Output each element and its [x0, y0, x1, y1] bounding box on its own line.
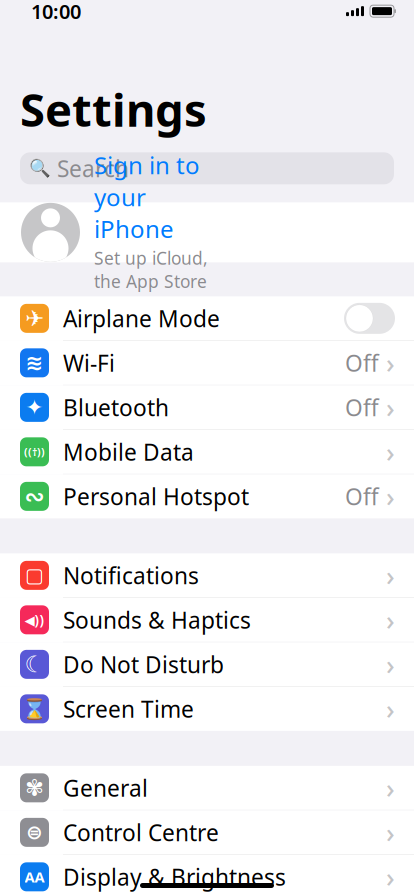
staticText: Notifications [63, 560, 199, 590]
staticText: ☾ [24, 651, 44, 677]
staticText: Mobile Data [63, 437, 194, 467]
staticText: Screen Time [63, 694, 194, 724]
button[interactable]: ∾ [0, 474, 414, 518]
staticText: › [386, 602, 395, 637]
button[interactable]: ≋ [0, 341, 414, 385]
button[interactable]: ✦ [0, 385, 414, 430]
button[interactable]: ⌛ [0, 687, 414, 731]
button[interactable]: ✾ [0, 766, 414, 810]
staticText: › [386, 434, 395, 469]
staticText: Settings [20, 79, 207, 139]
staticText: › [386, 558, 395, 593]
staticText: › [386, 345, 395, 380]
button[interactable]: ⊜ [0, 810, 414, 855]
staticText: › [386, 647, 395, 682]
staticText: ✈ [25, 305, 44, 331]
staticText: ⌛ [22, 697, 47, 720]
staticText: ⊜ [26, 821, 43, 844]
staticText: General [63, 773, 148, 803]
staticText: Sounds & Haptics [63, 605, 251, 635]
staticText: Bluetooth [63, 392, 169, 422]
button[interactable]: Sign in to your iPhone [0, 202, 414, 262]
staticText: › [386, 691, 395, 726]
button[interactable]: ☾ [0, 642, 414, 687]
staticText: ((†)) [24, 445, 45, 459]
staticText: ∾ [24, 483, 44, 510]
staticText: › [386, 859, 395, 894]
staticText: ✾ [25, 775, 44, 801]
staticText: Personal Hotspot [63, 481, 249, 511]
staticText: › [386, 770, 395, 805]
staticText: ◀)) [24, 611, 44, 629]
button[interactable]: ✈ [0, 296, 414, 341]
button[interactable]: ▢ [0, 553, 414, 598]
staticText: › [386, 815, 395, 850]
staticText: Set up iCloud, the App Store and more. [94, 247, 208, 316]
button[interactable]: AA [0, 855, 414, 896]
staticText: ▢ [25, 564, 44, 587]
staticText: 10:00 [31, 0, 81, 24]
staticText: Off [345, 392, 379, 422]
staticText: AA [24, 867, 44, 887]
staticText: Search [57, 153, 129, 183]
staticText: Airplane Mode [63, 303, 220, 333]
staticText: Off [345, 481, 379, 511]
staticText: › [386, 479, 395, 514]
staticText: Sign in to your iPhone [94, 149, 200, 245]
staticText: Do Not Disturb [63, 649, 224, 679]
staticText: Off [345, 348, 379, 378]
staticText: ✦ [25, 395, 43, 419]
staticText: Display & Brightness [63, 862, 286, 892]
staticText: › [386, 390, 395, 425]
button[interactable]: ((†)) [0, 430, 414, 474]
staticText: ≋ [25, 351, 43, 375]
staticText: Wi-Fi [63, 348, 115, 378]
staticText: 🔍 [29, 158, 51, 178]
button[interactable]: ◀)) [0, 598, 414, 642]
staticText: Control Centre [63, 817, 219, 847]
